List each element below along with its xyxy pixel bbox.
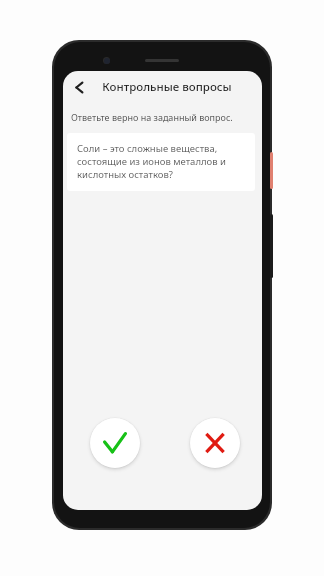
button[interactable]: Соли – это сложные вещества, состоящие и…	[67, 133, 255, 191]
staticText: Ответьте верно на заданный вопрос.	[71, 111, 233, 123]
button[interactable]: Back	[66, 74, 92, 100]
staticText: Контрольные вопросы	[102, 79, 232, 95]
staticText: Соли – это сложные вещества, состоящие и…	[77, 142, 226, 181]
button[interactable]: No	[190, 418, 240, 468]
button[interactable]: Yes	[90, 418, 140, 468]
